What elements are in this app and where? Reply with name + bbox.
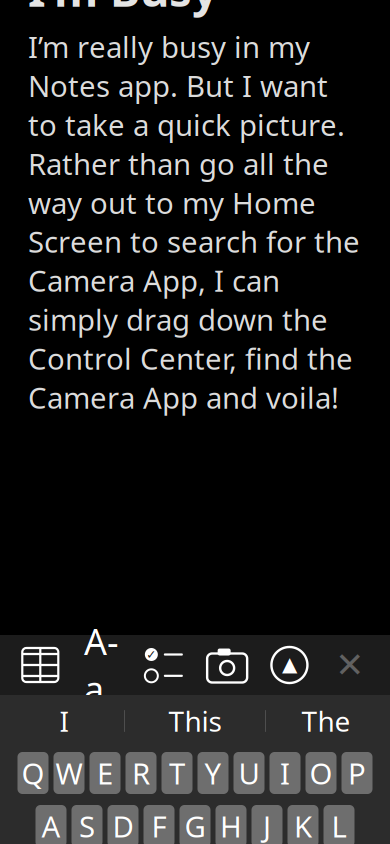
staticText: Q	[21, 753, 44, 792]
staticText: I	[59, 702, 68, 740]
button[interactable]: I	[4, 699, 124, 743]
button[interactable]: This	[125, 699, 265, 743]
button[interactable]: H	[215, 805, 246, 844]
staticText: A	[41, 806, 60, 844]
staticText: O	[309, 753, 332, 792]
button[interactable]: R	[125, 752, 156, 794]
button[interactable]: Close keyboard	[330, 646, 370, 684]
staticText: R	[132, 753, 150, 792]
staticText: I’m Busy	[28, 0, 218, 19]
button[interactable]: F	[143, 805, 174, 844]
button[interactable]: J	[251, 805, 282, 844]
button[interactable]: Q	[17, 752, 48, 794]
staticText: E	[97, 753, 113, 792]
staticText: F	[151, 806, 166, 844]
button[interactable]: E	[89, 752, 120, 794]
button[interactable]: Camera	[205, 646, 249, 684]
button[interactable]: K	[287, 805, 318, 844]
staticText: H	[220, 806, 242, 844]
button[interactable]: T	[161, 752, 192, 794]
staticText: U	[238, 753, 259, 792]
staticText: I’m really busy in my Notes app. But I w…	[28, 27, 360, 417]
button[interactable]: U	[233, 752, 264, 794]
button[interactable]: Table	[20, 646, 60, 684]
button[interactable]: S	[71, 805, 102, 844]
button[interactable]: The	[266, 699, 386, 743]
staticText: This	[168, 702, 221, 740]
staticText: D	[112, 806, 133, 844]
staticText: ▲	[282, 653, 297, 675]
staticText: L	[331, 806, 346, 844]
button[interactable]: Markup	[269, 646, 309, 684]
staticText: P	[348, 753, 366, 792]
staticText: The	[301, 702, 350, 740]
staticText: W	[55, 753, 82, 792]
button[interactable]: W	[53, 752, 84, 794]
button[interactable]: O	[305, 752, 336, 794]
button[interactable]: D	[107, 805, 138, 844]
staticText: I	[280, 753, 290, 792]
button[interactable]: A	[35, 805, 66, 844]
staticText: ✓	[146, 648, 156, 661]
staticText: K	[294, 806, 312, 844]
button[interactable]: I	[269, 752, 300, 794]
button[interactable]: G	[179, 805, 210, 844]
staticText: Y	[204, 753, 221, 792]
button[interactable]: Format	[81, 646, 123, 684]
staticText: T	[169, 753, 185, 792]
staticText: ✕	[335, 645, 364, 685]
staticText: G	[184, 806, 205, 844]
staticText: J	[263, 806, 271, 844]
button[interactable]: Y	[197, 752, 228, 794]
button[interactable]: Checklist	[143, 646, 185, 684]
button[interactable]: L	[323, 805, 354, 844]
staticText: Aa	[84, 617, 119, 713]
staticText: S	[79, 806, 95, 844]
button[interactable]: P	[341, 752, 372, 794]
